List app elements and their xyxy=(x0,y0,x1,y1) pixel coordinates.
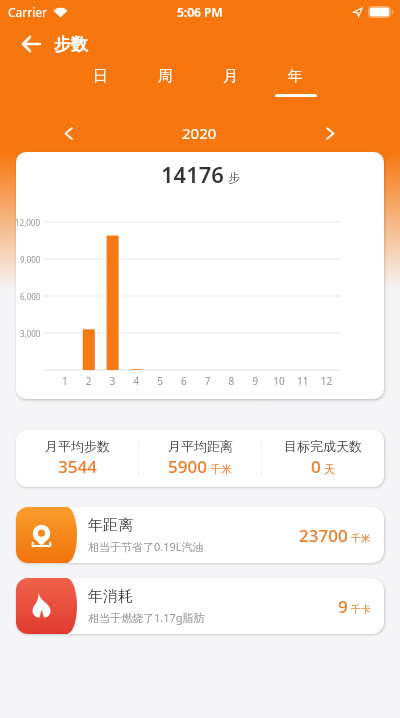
button[interactable]: 目标完成天数 xyxy=(262,430,384,487)
button[interactable]: 月平均距离 xyxy=(139,430,261,487)
staticText: 相当于节省了0.19L汽油 xyxy=(88,539,204,554)
staticText: 年消耗 xyxy=(88,587,133,606)
staticText: 年 xyxy=(288,67,303,86)
staticText: 14176 xyxy=(161,159,224,189)
staticText: 天 xyxy=(324,462,335,476)
staticText: 千米 xyxy=(351,532,371,545)
staticText: 目标完成天数 xyxy=(284,438,362,454)
button[interactable]: 年距离 xyxy=(16,507,384,563)
staticText: 年距离 xyxy=(88,516,133,535)
button[interactable] xyxy=(318,120,344,146)
staticText: 5:06 PM xyxy=(177,4,223,20)
button[interactable]: 周 xyxy=(133,64,198,100)
staticText: 步数 xyxy=(54,34,88,55)
staticText: 0 xyxy=(311,455,321,478)
staticText: 月平均距离 xyxy=(168,438,233,454)
button[interactable]: 日 xyxy=(68,64,133,100)
button[interactable] xyxy=(55,120,81,146)
staticText: 千卡 xyxy=(351,603,371,616)
staticText: Carrier xyxy=(8,4,48,20)
staticText: 日 xyxy=(93,67,108,86)
staticText: 周 xyxy=(158,67,173,86)
staticText: 相当于燃烧了1.17g脂肪 xyxy=(88,610,205,625)
button[interactable]: 年消耗 xyxy=(16,578,384,634)
button[interactable] xyxy=(16,30,44,58)
staticText: 步 xyxy=(228,170,240,185)
button[interactable]: 月平均步数 xyxy=(16,430,138,487)
staticText: 月 xyxy=(223,67,238,86)
button[interactable]: 月 xyxy=(198,64,263,100)
button[interactable]: 年 xyxy=(263,64,328,100)
staticText: 千米 xyxy=(210,462,232,476)
staticText: 3544 xyxy=(58,455,97,478)
staticText: 9 xyxy=(338,595,348,618)
staticText: 月平均步数 xyxy=(45,438,110,454)
staticText: 5900 xyxy=(168,455,207,478)
staticText: 2020 xyxy=(182,123,217,143)
staticText: 23700 xyxy=(299,524,348,547)
